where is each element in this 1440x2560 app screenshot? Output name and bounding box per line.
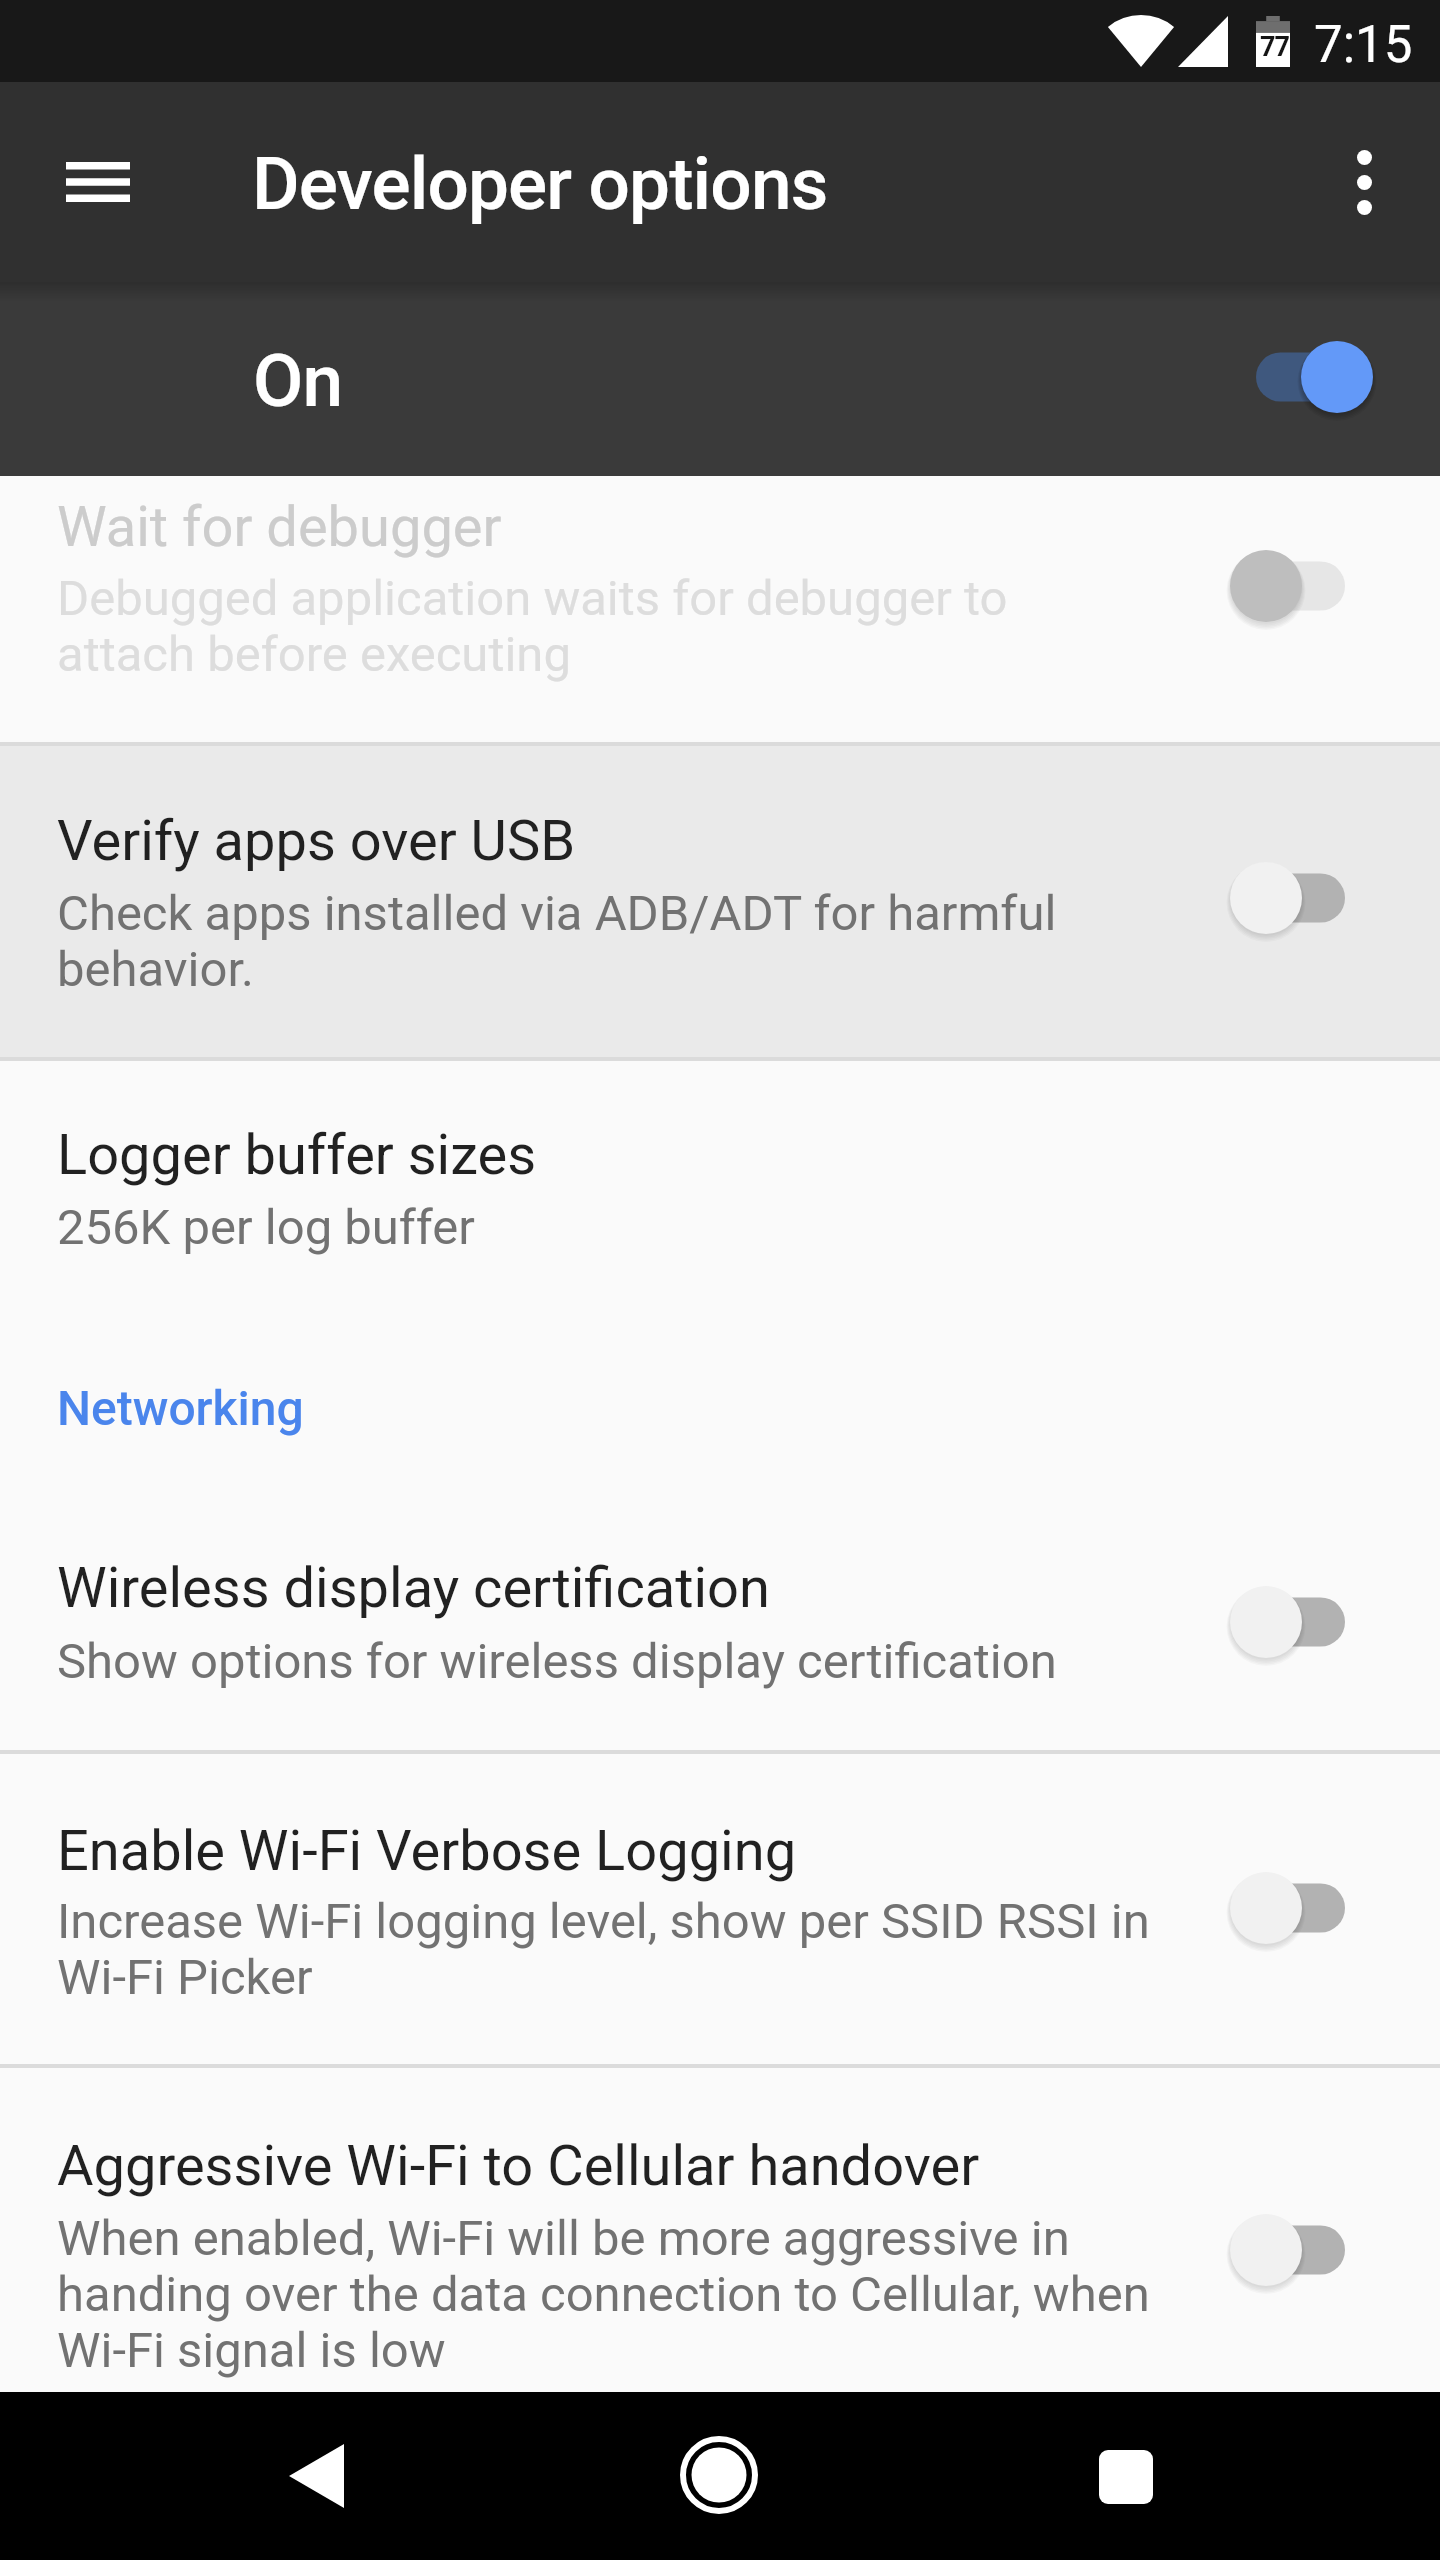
staticText: Enable Wi-Fi Verbose Logging (57, 1818, 797, 1884)
staticText: 7:15 (1314, 15, 1413, 75)
staticText: Check apps installed via ADB/ADT for har… (57, 885, 1057, 998)
button[interactable]: Wireless display certification (0, 1494, 1440, 1750)
button[interactable]: Back (266, 2426, 366, 2526)
button[interactable]: Verify apps over USB toggle (1222, 850, 1358, 946)
button[interactable]: Wait for debugger toggle (1222, 538, 1358, 634)
staticText: Wireless display certification (57, 1555, 770, 1621)
button[interactable]: Logger buffer sizes (0, 1061, 1440, 1300)
staticText: Increase Wi-Fi logging level, show per S… (57, 1893, 1150, 2006)
staticText: Show options for wireless display certif… (57, 1633, 1057, 1690)
staticText: Aggressive Wi-Fi to Cellular handover (57, 2133, 980, 2199)
button[interactable]: More options (1317, 134, 1411, 230)
staticText: Verify apps over USB (57, 808, 576, 874)
button[interactable]: Aggressive Wi-Fi to Cellular handover (0, 2068, 1440, 2392)
staticText: Networking (57, 1380, 304, 1436)
staticText: Debugged application waits for debugger … (57, 570, 1008, 683)
button[interactable]: Developer options toggle (1222, 329, 1358, 425)
staticText: 77 (1260, 31, 1289, 63)
button[interactable]: Recent apps (1076, 2427, 1176, 2527)
button[interactable]: Verify apps over USB (0, 746, 1440, 1057)
button[interactable]: Aggressive Wi-Fi to Cellular handover to… (1222, 2202, 1358, 2298)
staticText: Developer options (252, 141, 828, 227)
button[interactable]: Enable Wi-Fi Verbose Logging (0, 1754, 1440, 2064)
button[interactable]: Wait for debugger (0, 476, 1440, 742)
button[interactable]: Enable Wi-Fi Verbose Logging toggle (1222, 1860, 1358, 1956)
button[interactable] (0, 282, 1440, 476)
staticText: Wait for debugger (57, 494, 502, 560)
staticText: Logger buffer sizes (57, 1122, 537, 1188)
staticText: 256K per log buffer (57, 1199, 475, 1256)
button[interactable]: Navigation menu (46, 134, 150, 230)
staticText: When enabled, Wi-Fi will be more aggress… (57, 2210, 1150, 2379)
staticText: On (253, 338, 343, 424)
button[interactable]: Home (669, 2425, 769, 2525)
button[interactable]: Wireless display certification toggle (1222, 1574, 1358, 1670)
